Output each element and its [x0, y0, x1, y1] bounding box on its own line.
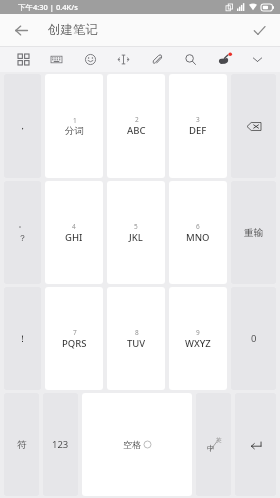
button[interactable]: Emoji — [79, 48, 101, 70]
button[interactable]: 5 — [107, 181, 165, 284]
button[interactable]: Enter — [235, 393, 276, 496]
button[interactable]: 6 — [169, 181, 227, 284]
button[interactable]: Text edit — [112, 48, 134, 70]
button[interactable]: Keyboard — [45, 48, 67, 70]
button[interactable]: Collapse keyboard — [246, 48, 268, 70]
button[interactable]: Save — [246, 17, 272, 43]
staticText: ？ — [18, 233, 27, 244]
staticText: DEF — [189, 124, 207, 137]
button[interactable]: 0 — [231, 287, 276, 390]
staticText: 空格 — [123, 439, 141, 450]
staticText: 创建笔记 — [48, 22, 98, 38]
button[interactable]: Attach — [146, 48, 168, 70]
staticText: ABC — [127, 124, 146, 137]
button[interactable]: 空格 — [82, 393, 192, 496]
staticText: 1 — [73, 116, 77, 125]
staticText: 重输 — [244, 227, 263, 239]
staticText: 8 — [135, 328, 139, 337]
staticText: ， — [18, 120, 28, 132]
staticText: 2 — [135, 115, 139, 124]
button[interactable]: Apps — [12, 48, 34, 70]
staticText: 下午4:30 | 0.4K/s — [18, 2, 78, 12]
staticText: ！ — [18, 333, 28, 345]
staticText: 4 — [72, 222, 76, 231]
button[interactable]: 9 — [169, 287, 227, 390]
staticText: TUV — [127, 337, 146, 350]
staticText: 7 — [73, 328, 77, 337]
staticText: 分词 — [65, 125, 84, 137]
staticText: GHI — [65, 231, 83, 244]
button[interactable]: Search — [179, 48, 201, 70]
staticText: 英 — [216, 437, 222, 444]
button[interactable]: Backspace — [231, 74, 276, 178]
button[interactable]: 符 — [4, 393, 39, 496]
staticText: 123 — [52, 438, 69, 451]
staticText: 5 — [134, 222, 138, 231]
button[interactable]: Back — [8, 17, 34, 43]
staticText: 中 — [207, 444, 215, 453]
button[interactable]: 123 — [43, 393, 78, 496]
button[interactable]: 4 — [45, 181, 103, 284]
button[interactable]: 英 — [196, 393, 231, 496]
button[interactable]: ！ — [4, 287, 41, 390]
button[interactable]: 1 — [45, 74, 103, 178]
staticText: MNO — [186, 231, 210, 244]
staticText: 6 — [196, 222, 200, 231]
button[interactable]: Handwriting — [213, 48, 235, 70]
button[interactable]: 8 — [107, 287, 165, 390]
button[interactable]: 。 — [4, 181, 41, 284]
staticText: 。 — [18, 219, 27, 230]
staticText: WXYZ — [185, 337, 211, 350]
staticText: 0 — [251, 332, 257, 345]
button[interactable]: 3 — [169, 74, 227, 178]
staticText: PQRS — [62, 337, 87, 350]
staticText: JKL — [129, 231, 143, 244]
staticText: 3 — [196, 115, 200, 124]
button[interactable]: 7 — [45, 287, 103, 390]
button[interactable]: 重输 — [231, 181, 276, 284]
staticText: 符 — [17, 439, 27, 451]
button[interactable]: 2 — [107, 74, 165, 178]
staticText: 9 — [196, 328, 200, 337]
